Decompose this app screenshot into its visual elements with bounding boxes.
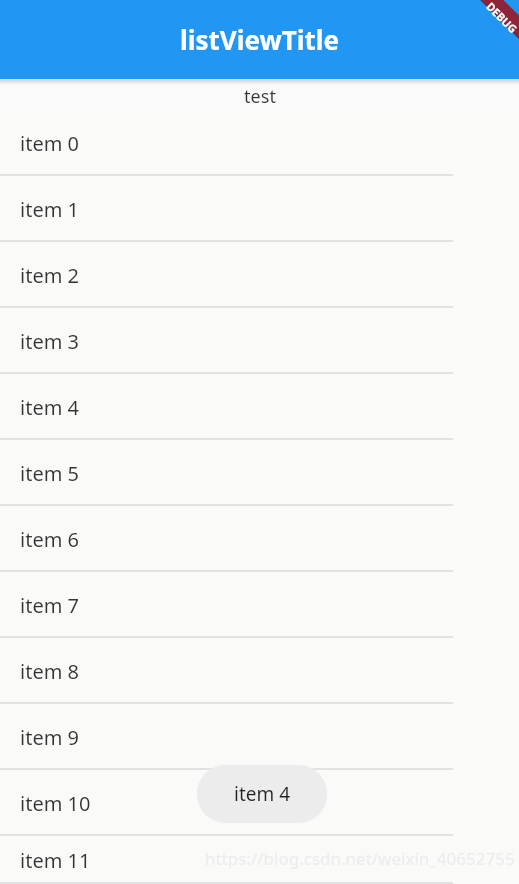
staticText: item 4 [20,394,79,421]
button[interactable]: item 9 [0,704,519,770]
staticText: item 5 [20,460,79,487]
staticText: item 2 [20,262,79,289]
button[interactable]: item 11 [0,836,519,884]
button[interactable]: item 5 [0,440,519,506]
staticText: item 7 [20,592,79,619]
button[interactable]: item 3 [0,308,519,374]
staticText: item 4 [234,781,291,807]
staticText: item 11 [20,847,91,874]
staticText: DEBUG [483,0,519,36]
staticText: item 0 [20,130,79,157]
staticText: https://blog.csdn.net/weixin_40652755 [205,847,515,870]
staticText: item 10 [20,790,91,817]
staticText: test [244,84,276,106]
staticText: item 8 [20,658,79,685]
staticText: item 6 [20,526,79,553]
staticText: listViewTitle [180,22,340,57]
staticText: item 9 [20,724,79,751]
staticText: item 3 [20,328,79,355]
button[interactable]: item 10 [0,770,519,836]
button[interactable]: item 2 [0,242,519,308]
staticText: item 1 [20,196,79,223]
button[interactable]: item 6 [0,506,519,572]
button[interactable]: item 4 [0,374,519,440]
other: Debug banner [459,0,519,60]
button[interactable]: item 8 [0,638,519,704]
button[interactable]: item 7 [0,572,519,638]
button[interactable]: item 0 [0,110,519,176]
button[interactable]: item 1 [0,176,519,242]
